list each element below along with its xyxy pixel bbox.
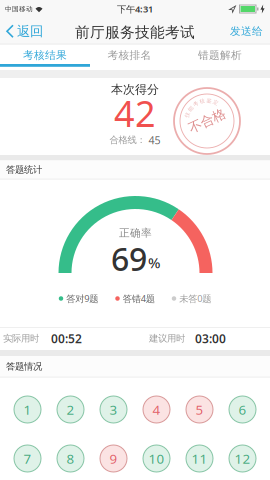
staticText: 9 [109, 450, 117, 467]
staticText: 03:00 [195, 330, 226, 346]
button[interactable]: 9 [100, 445, 127, 472]
staticText: 发送给 [230, 25, 263, 38]
staticText: 考 [193, 101, 198, 107]
staticText: 答错4题 [123, 292, 155, 305]
staticText: 7 [23, 450, 31, 467]
staticText: % [148, 253, 160, 272]
staticText: 正确率 [119, 226, 152, 239]
staticText: 3 [109, 401, 117, 418]
staticText: 返回 [17, 23, 43, 39]
staticText: 能 [188, 105, 193, 112]
button[interactable]: 发送给 [230, 25, 270, 38]
staticText: 鉴 [206, 97, 211, 104]
staticText: 6 [238, 401, 246, 418]
staticText: 4 [152, 401, 160, 418]
button[interactable]: 10 [143, 445, 170, 472]
staticText: 定 [213, 99, 218, 106]
staticText: 42 [114, 89, 156, 137]
staticText: 答题情况 [6, 361, 42, 372]
staticText: 不合格 [187, 113, 226, 129]
button[interactable]: 7 [14, 445, 41, 472]
staticText: 00:52 [51, 330, 82, 346]
staticText: 69 [111, 237, 147, 280]
staticText: 11 [191, 450, 207, 467]
staticText: 8 [66, 450, 74, 467]
button[interactable]: 3 [100, 396, 127, 423]
staticText: 建议用时 [149, 333, 185, 344]
staticText: 45 [148, 133, 160, 147]
staticText: 2 [66, 401, 74, 418]
button[interactable]: 6 [229, 396, 256, 423]
staticText: 未答0题 [179, 292, 211, 305]
staticText: 核 [199, 98, 204, 104]
staticText: 10 [148, 450, 164, 467]
staticText: 实际用时 [3, 333, 39, 344]
button[interactable]: 返回 [0, 23, 43, 39]
staticText: 技 [185, 112, 190, 118]
staticText: 答题统计 [6, 164, 42, 175]
staticText: 错题解析 [198, 49, 242, 62]
staticText: 5 [195, 401, 203, 418]
staticText: 前厅服务技能考试 [75, 23, 195, 41]
staticText: 中国移动 [5, 5, 33, 13]
staticText: 考核排名 [107, 49, 151, 62]
button[interactable]: 2 [57, 396, 84, 423]
button[interactable]: 8 [57, 445, 84, 472]
staticText: 下午4:31 [117, 3, 153, 15]
button[interactable]: 11 [186, 445, 213, 472]
button[interactable]: 1 [14, 396, 41, 423]
button[interactable]: 12 [229, 445, 256, 472]
button[interactable]: 错题解析 [180, 42, 270, 68]
staticText: 本次得分 [111, 82, 159, 97]
staticText: 合格线： [109, 134, 145, 146]
staticText: 1 [23, 401, 31, 418]
staticText: 12 [234, 450, 250, 467]
button[interactable]: 5 [186, 396, 213, 423]
button[interactable]: 考核结果 [0, 42, 90, 68]
staticText: 答对9题 [66, 292, 98, 305]
button[interactable]: 4 [143, 396, 170, 423]
button[interactable]: 考核排名 [90, 42, 180, 68]
staticText: 考核结果 [23, 49, 67, 62]
